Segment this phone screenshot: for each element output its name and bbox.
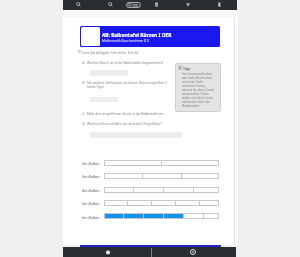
staticText: (siehe Tipp) (87, 85, 105, 89)
staticText: 2er-Balken (82, 161, 100, 166)
staticText: a) (82, 61, 85, 65)
staticText: 5er-Balken (82, 201, 100, 206)
button[interactable]: AB: Balkentafel Kürzen I OER (80, 26, 220, 47)
staticText: Mathematik Bruchrechnen II 5 (102, 38, 150, 42)
staticText: Welcher Bruch ist in der Balkentafel ein… (87, 61, 164, 65)
staticText: Um herauszufinden, wie viele Bruch man m… (182, 72, 216, 108)
staticText: 6er-Balken (82, 215, 100, 220)
button[interactable]: Send (185, 1, 192, 8)
button[interactable]: Device toolbar (153, 1, 160, 8)
staticText: Tipp (183, 66, 191, 71)
staticText: AB: Balkentafel Kürzen I OER (102, 32, 172, 39)
staticText: 150 (132, 3, 139, 8)
staticText: d) (82, 122, 85, 126)
staticText: Welchen Bruch erhältst du nach dem Vergr… (87, 122, 162, 126)
staticText: c) (82, 112, 85, 116)
button[interactable]: Zoom level (126, 2, 141, 8)
button[interactable]: Search (107, 1, 114, 8)
staticText: Mit welcher Zahl kannst du diesen Bruch … (87, 81, 167, 85)
button[interactable]: Search (75, 1, 82, 8)
button[interactable]: Info (152, 247, 236, 257)
staticText: b) (82, 81, 85, 85)
staticText: Male den vergrößerten Bruch in die Balke… (87, 112, 165, 116)
button[interactable]: Page info (216, 1, 223, 8)
staticText: Löse die Aufgabe Schritt für Schritt (82, 50, 139, 55)
staticText: 4er-Balken (82, 188, 100, 193)
staticText: 3er-Balken (82, 174, 100, 179)
button[interactable]: Home (63, 247, 151, 257)
